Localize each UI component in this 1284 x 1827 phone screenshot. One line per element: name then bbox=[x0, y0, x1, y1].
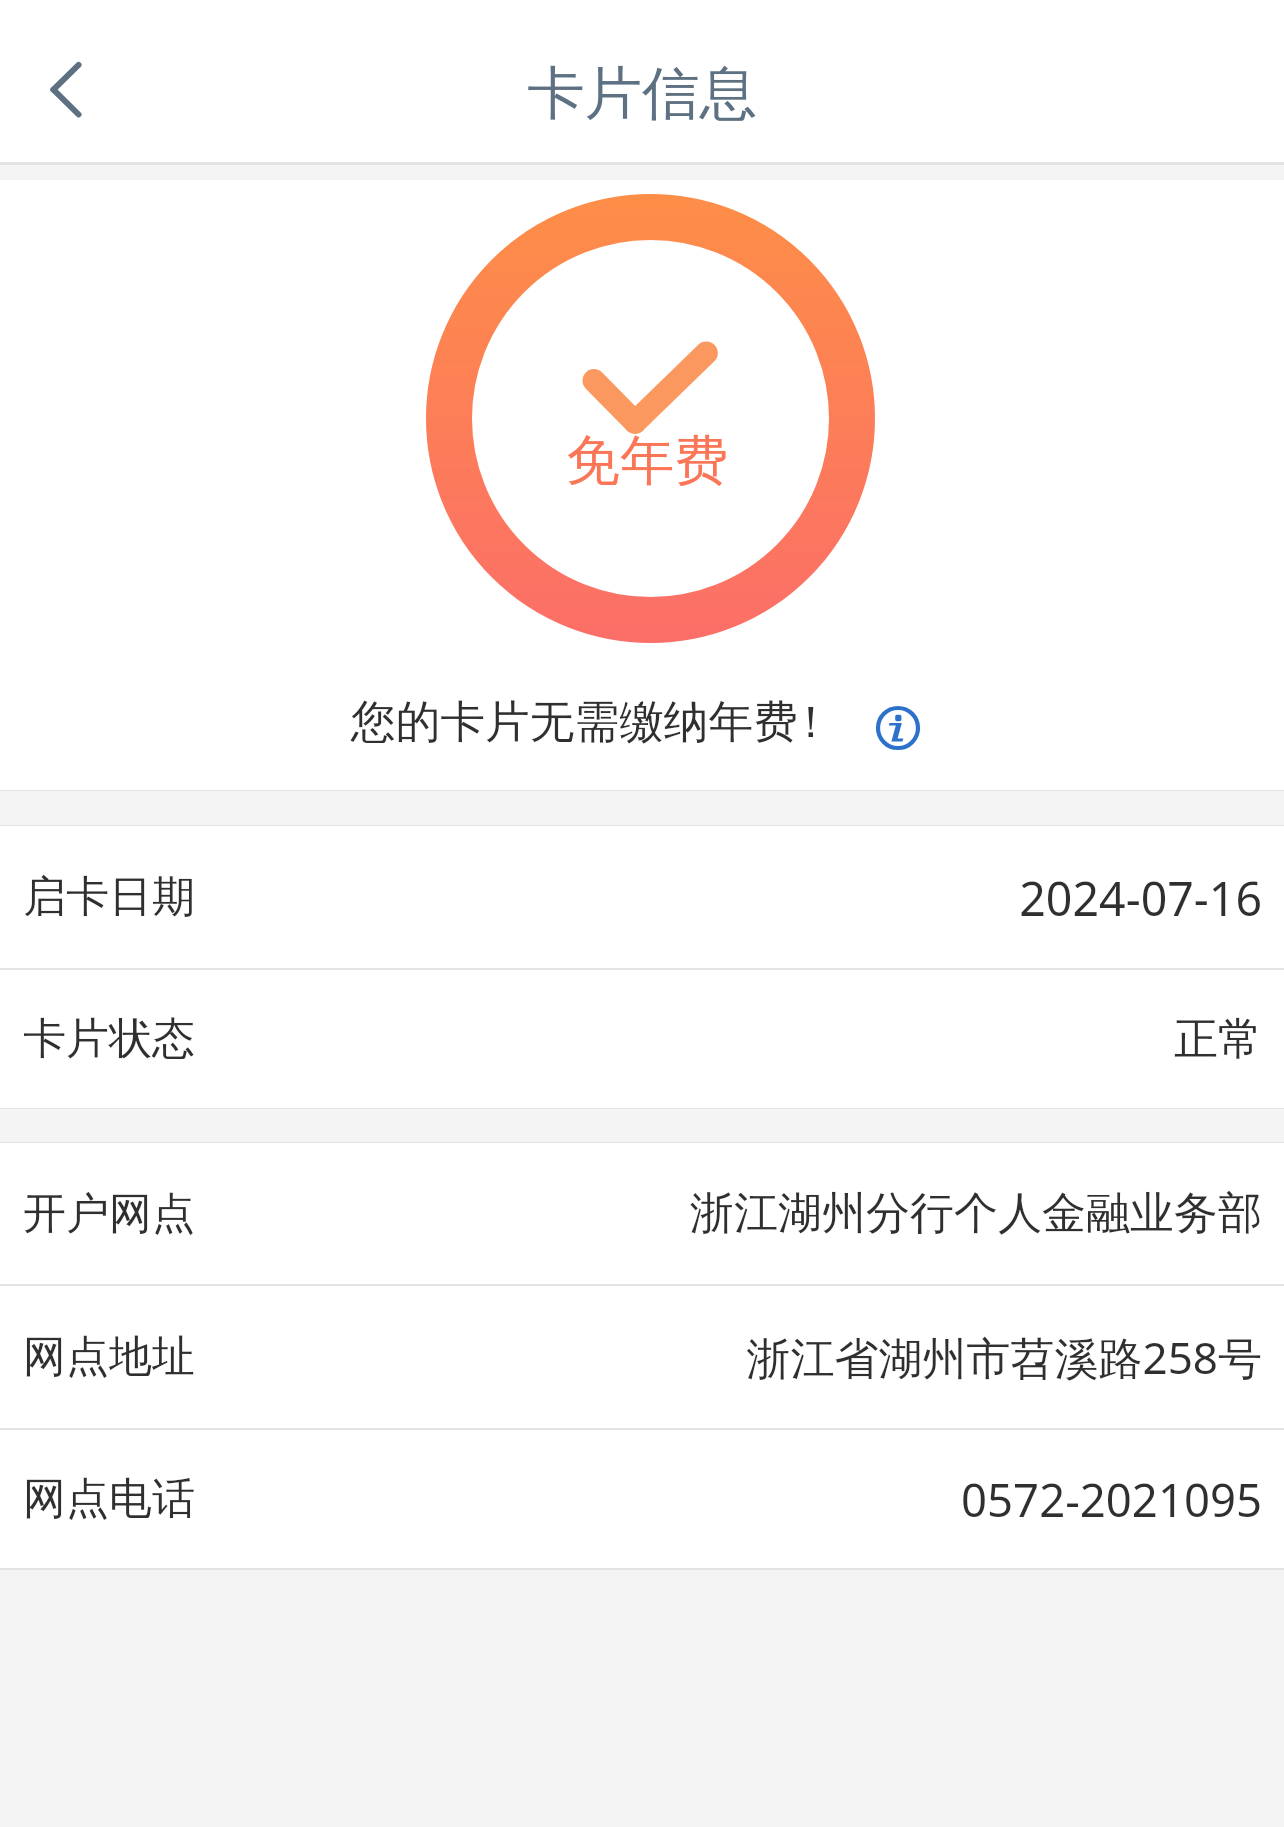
staticText: 网点电话 bbox=[23, 1472, 195, 1526]
staticText: 浙江省湖州市苕溪路258号 bbox=[215, 1327, 1262, 1387]
button[interactable]: 网点电话 bbox=[0, 1430, 1284, 1568]
staticText: 您的卡片无需缴纳年费 bbox=[351, 694, 798, 750]
button[interactable]: 开户网点 bbox=[0, 1143, 1284, 1284]
staticText: 卡片状态 bbox=[23, 1012, 195, 1066]
button[interactable]: 启卡日期 bbox=[0, 826, 1284, 968]
staticText: 浙江湖州分行个人金融业务部 bbox=[215, 1186, 1262, 1241]
button[interactable]: Back bbox=[0, 0, 132, 162]
staticText: 启卡日期 bbox=[23, 870, 195, 924]
staticText: ！ bbox=[789, 695, 833, 750]
staticText: 0572-2021095 bbox=[215, 1468, 1262, 1530]
staticText: 2024-07-16 bbox=[215, 866, 1262, 929]
staticText: 网点地址 bbox=[23, 1330, 195, 1384]
button[interactable]: 卡片状态 bbox=[0, 970, 1284, 1108]
button[interactable]: Info bbox=[867, 697, 929, 759]
staticText: 正常 bbox=[215, 1012, 1262, 1067]
staticText: 卡片信息 bbox=[527, 58, 757, 130]
button[interactable]: 网点地址 bbox=[0, 1286, 1284, 1428]
staticText: 开户网点 bbox=[23, 1187, 195, 1241]
staticText: 免年费 bbox=[566, 427, 728, 495]
